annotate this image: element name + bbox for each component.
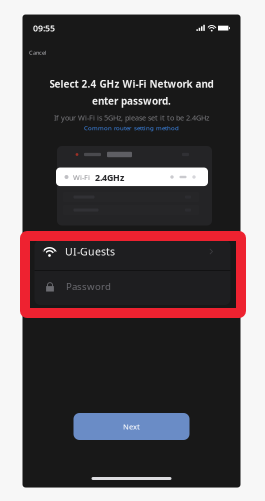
staticText: 09:55	[33, 22, 55, 34]
button[interactable]: Next	[73, 413, 189, 440]
staticText: Wi-Fi	[73, 173, 90, 182]
staticText: enter password.	[92, 94, 171, 108]
button[interactable]: Common router setting method	[84, 123, 179, 133]
staticText: Next	[123, 421, 140, 432]
staticText: Common router setting method	[84, 124, 179, 132]
staticText: If your Wi-Fi is 5GHz, please set it to …	[54, 113, 209, 123]
button[interactable]: Cancel	[29, 45, 63, 59]
staticText: UI-Guests	[65, 244, 115, 259]
staticText: 2.4GHz	[95, 171, 124, 183]
staticText: Password	[66, 280, 111, 293]
staticText: Cancel	[29, 49, 46, 56]
button[interactable]: UI-Guests	[34, 237, 230, 266]
staticText: Select 2.4 GHz Wi-Fi Network and	[49, 77, 213, 91]
button[interactable]: Password	[34, 272, 230, 301]
